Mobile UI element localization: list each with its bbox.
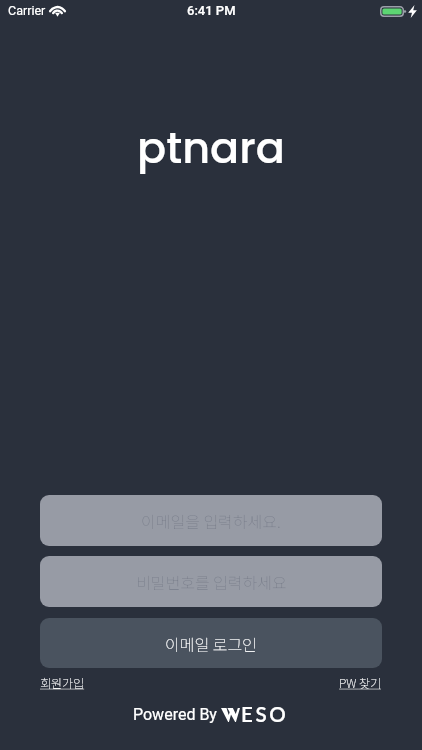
button[interactable]: 비밀번호를 입력하세요 bbox=[40, 556, 382, 607]
staticText: ptnara bbox=[137, 118, 285, 178]
staticText: 이메일을 입력하세요. bbox=[141, 509, 281, 532]
button[interactable]: 이메일을 입력하세요. bbox=[40, 495, 382, 546]
staticText: ESO bbox=[241, 702, 289, 727]
staticText: 6:41 PM bbox=[187, 3, 236, 18]
staticText: Powered By bbox=[133, 705, 217, 724]
button[interactable]: 회원가입 bbox=[40, 674, 85, 691]
staticText: PW 찾기 bbox=[339, 674, 382, 691]
button[interactable]: 이메일 로그인 bbox=[40, 618, 382, 668]
staticText: 이메일 로그인 bbox=[165, 632, 257, 655]
staticText: 비밀번호를 입력하세요 bbox=[136, 570, 287, 593]
staticText: 회원가입 bbox=[40, 674, 85, 691]
staticText: Carrier bbox=[8, 3, 46, 18]
button[interactable]: PW 찾기 bbox=[339, 674, 382, 691]
